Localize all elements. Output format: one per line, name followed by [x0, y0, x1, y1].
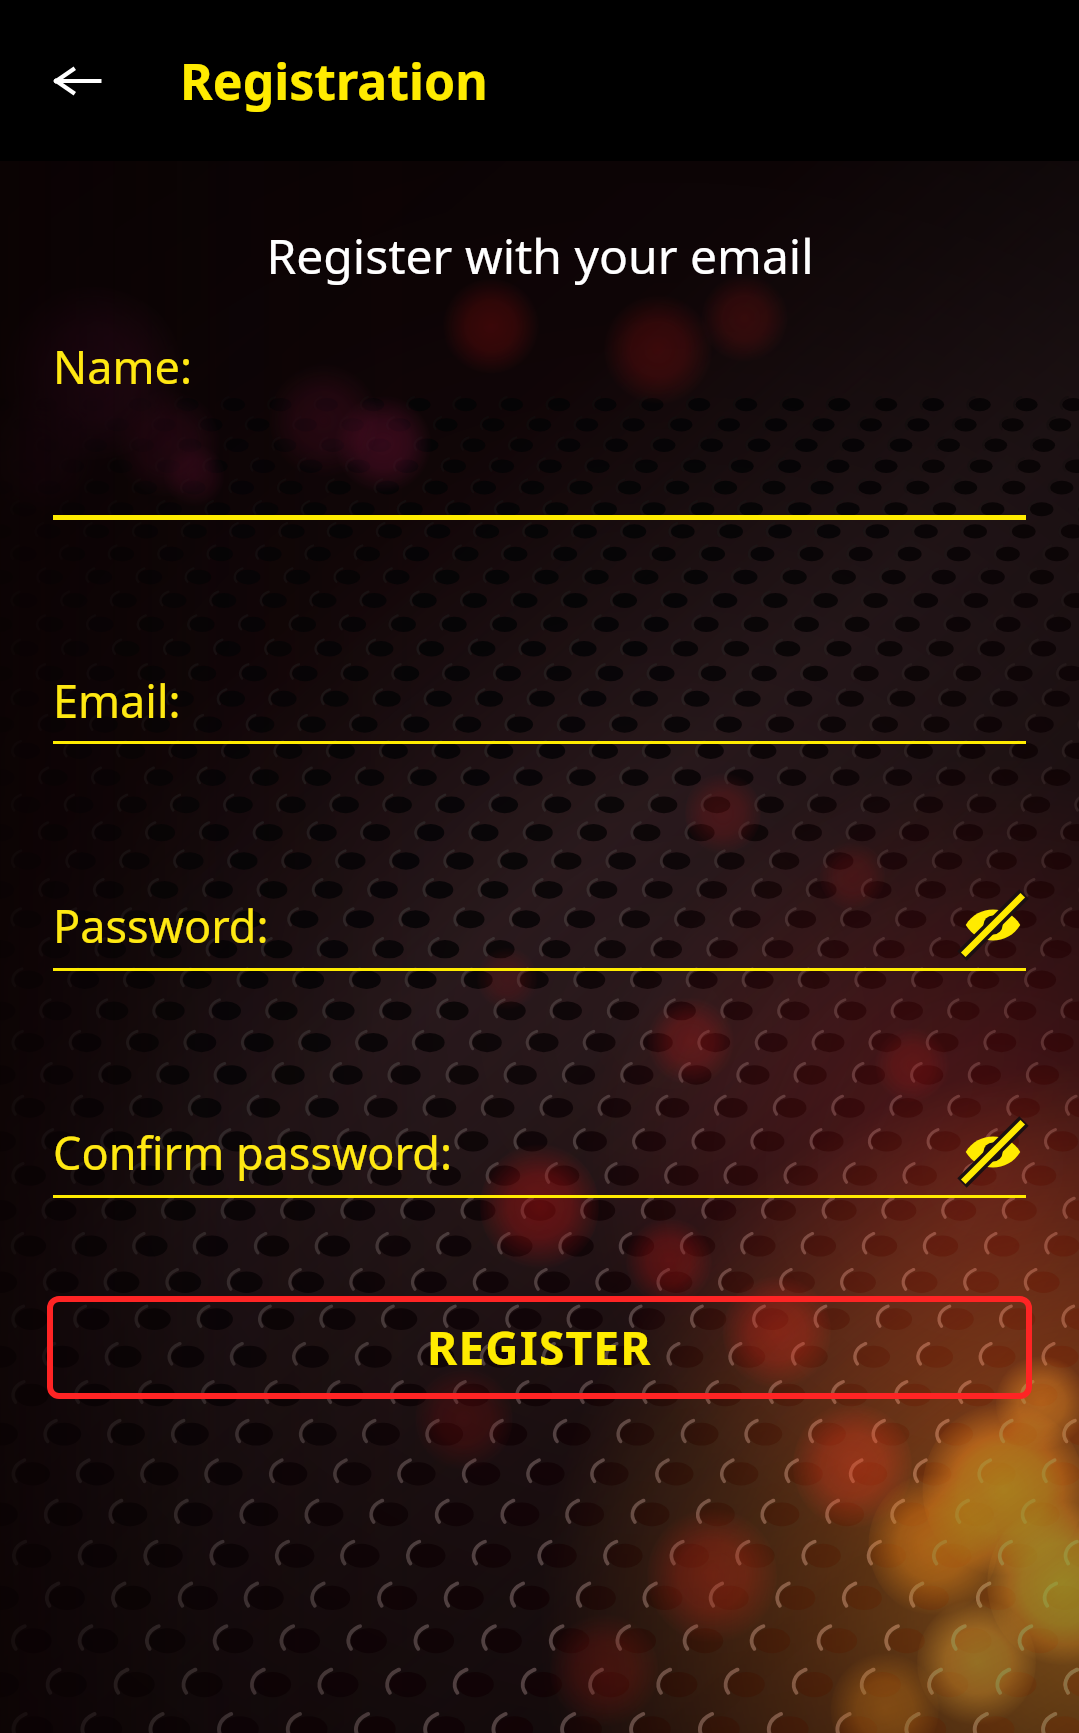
- button[interactable]: Email:: [53, 670, 1026, 744]
- button[interactable]: Confirm password:: [53, 1119, 1026, 1198]
- button[interactable]: Back: [40, 44, 114, 118]
- staticText: Register with your email: [266, 223, 814, 288]
- staticText: Name:: [53, 336, 192, 397]
- button[interactable]: Name:: [53, 336, 1026, 520]
- button[interactable]: REGISTER: [47, 1296, 1032, 1399]
- staticText: Password:: [53, 895, 269, 956]
- staticText: Confirm password:: [53, 1122, 452, 1183]
- button[interactable]: Password:: [53, 892, 1026, 971]
- button[interactable]: Show confirm password: [960, 1119, 1026, 1185]
- staticText: REGISTER: [427, 1316, 652, 1379]
- staticText: Registration: [180, 47, 488, 115]
- button[interactable]: Show password: [960, 892, 1026, 958]
- staticText: Email:: [53, 670, 181, 731]
